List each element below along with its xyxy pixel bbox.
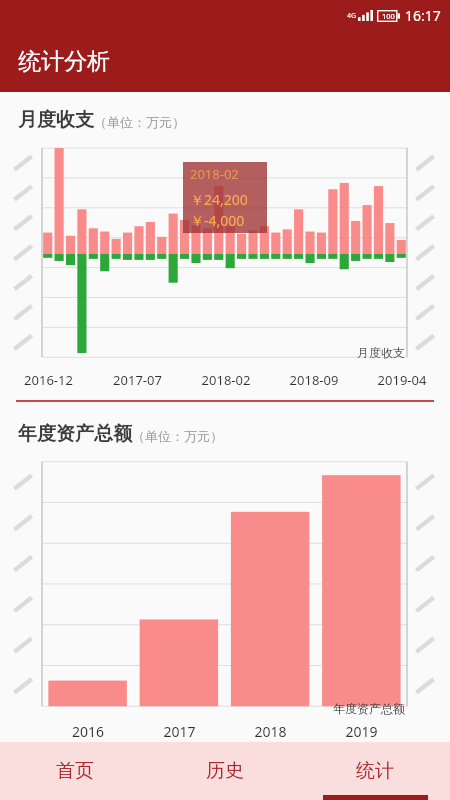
staticText: 2019-04 — [358, 371, 446, 389]
staticText: 2016-12 — [4, 371, 93, 389]
staticText: 年度资产总额 — [18, 422, 132, 446]
button[interactable]: 历史 — [150, 742, 300, 800]
button[interactable]: 2018-02 — [183, 162, 267, 233]
staticText: 首页 — [56, 759, 94, 783]
staticText: 2017 — [134, 722, 225, 741]
staticText: 月度收支 — [357, 345, 405, 360]
staticText: 统计分析 — [18, 47, 110, 76]
staticText: 历史 — [206, 759, 244, 783]
staticText: 2017-07 — [93, 371, 182, 389]
staticText: （单位：万元） — [94, 114, 185, 130]
staticText: 4G — [347, 11, 357, 21]
staticText: 2016 — [42, 722, 134, 741]
staticText: 2018-02 — [182, 371, 270, 389]
staticText: 2019 — [316, 722, 407, 741]
staticText: 100 — [382, 11, 395, 21]
staticText: 月度收支 — [18, 108, 94, 132]
staticText: 16:17 — [405, 6, 441, 25]
staticText: 年度资产总额 — [333, 701, 405, 716]
staticText: 2018-09 — [270, 371, 358, 389]
other: Battery 100 percent — [377, 10, 400, 22]
button[interactable]: 统计 — [300, 742, 450, 800]
other: Signal strength — [358, 10, 373, 21]
staticText: （单位：万元） — [132, 428, 223, 444]
staticText: ￥-4,000 — [190, 211, 245, 230]
staticText: 统计 — [356, 759, 394, 783]
staticText: ￥24,200 — [190, 190, 248, 209]
staticText: 2018-02 — [190, 165, 239, 183]
button[interactable]: 首页 — [0, 742, 150, 800]
staticText: 2018 — [225, 722, 316, 741]
